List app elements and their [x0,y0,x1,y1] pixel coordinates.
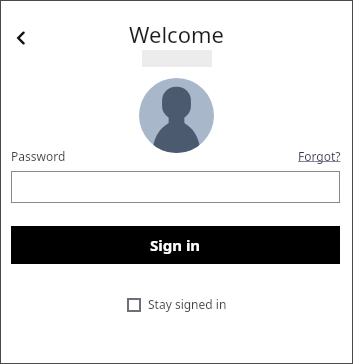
staticText: Password [11,148,66,164]
staticText: Forgot? [298,148,341,164]
button[interactable]: Back [4,21,38,55]
button[interactable]: Forgot? [298,148,341,164]
staticText: Stay signed in [148,296,227,312]
button[interactable]: Sign in [11,226,340,264]
button[interactable]: Profile photo [139,78,214,153]
staticText: Sign in [150,235,201,255]
button[interactable]: Password input [11,171,340,203]
button[interactable]: Stay signed in [127,296,227,312]
staticText: Welcome [129,19,224,49]
